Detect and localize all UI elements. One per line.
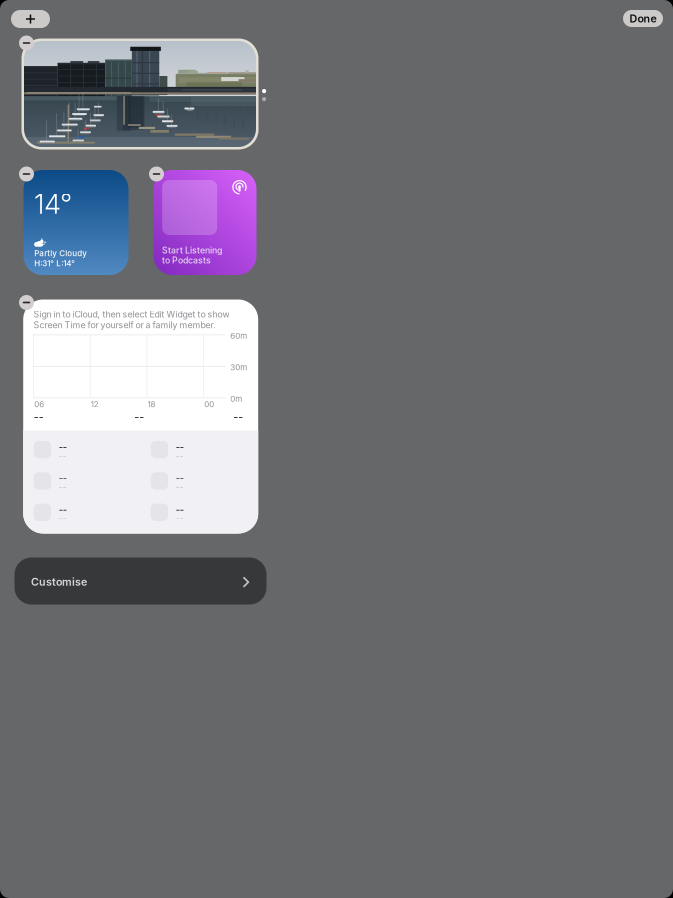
- button[interactable]: Add widget: [11, 10, 50, 28]
- staticText: 14°: [34, 188, 72, 220]
- staticText: --: [59, 514, 67, 523]
- staticText: Screen Time for yourself or a family mem…: [33, 320, 216, 330]
- staticText: --: [34, 410, 44, 423]
- button[interactable]: Podcasts widget, start listening to podc…: [153, 170, 256, 275]
- staticText: --: [176, 472, 184, 484]
- staticText: --: [176, 441, 184, 452]
- staticText: Customise: [31, 575, 87, 588]
- staticText: 60m: [230, 331, 247, 341]
- staticText: Done: [629, 12, 656, 25]
- staticText: 00: [204, 399, 214, 409]
- staticText: H:31° L:14°: [34, 258, 75, 268]
- button[interactable]: Photos widget: [21, 38, 258, 149]
- staticText: 30m: [230, 362, 247, 372]
- button[interactable]: Customise: [14, 557, 266, 604]
- staticText: --: [59, 451, 67, 461]
- staticText: Partly Cloudy: [34, 248, 87, 258]
- button[interactable]: Weather widget, 14 degrees, partly cloud…: [23, 170, 128, 275]
- staticText: Sign in to iCloud, then select Edit Widg…: [33, 309, 229, 320]
- staticText: --: [176, 504, 184, 515]
- staticText: Start Listening: [162, 245, 222, 255]
- staticText: --: [59, 482, 67, 492]
- button[interactable]: Remove widget: [19, 166, 34, 181]
- staticText: --: [134, 410, 144, 423]
- button[interactable]: Remove widget: [19, 295, 34, 310]
- staticText: 06: [34, 399, 44, 409]
- staticText: --: [59, 472, 67, 484]
- button[interactable]: Done: [623, 10, 663, 27]
- button[interactable]: Remove widget: [19, 35, 34, 50]
- staticText: --: [59, 504, 67, 515]
- button[interactable]: Screen Time widget: [23, 299, 258, 533]
- staticText: --: [176, 451, 184, 461]
- staticText: --: [59, 441, 67, 452]
- staticText: 12: [91, 399, 99, 409]
- staticText: --: [233, 410, 243, 423]
- staticText: 18: [147, 399, 155, 409]
- staticText: --: [176, 482, 184, 492]
- staticText: to Podcasts: [162, 255, 211, 265]
- button[interactable]: Remove widget: [149, 166, 164, 181]
- staticText: --: [176, 514, 184, 523]
- staticText: 0m: [230, 394, 242, 404]
